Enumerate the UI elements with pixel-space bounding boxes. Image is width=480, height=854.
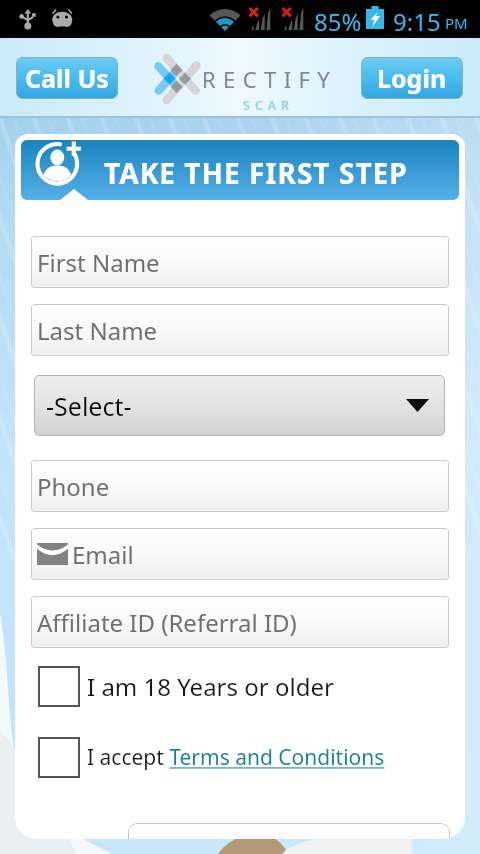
staticText: I accept Terms and Conditions: [87, 743, 385, 772]
button[interactable]: Affiliate ID (Referral ID): [31, 596, 449, 648]
button[interactable]: Login: [361, 57, 463, 99]
staticText: 85%: [314, 5, 362, 38]
staticText: Phone: [37, 470, 110, 503]
button[interactable]: Email: [31, 528, 449, 580]
staticText: 9:15: [393, 5, 441, 38]
staticText: Login: [377, 61, 447, 95]
button[interactable]: Phone: [31, 460, 449, 512]
staticText: SCAR: [243, 97, 294, 114]
button[interactable]: -Select-: [34, 375, 445, 436]
button[interactable]: First Name: [31, 236, 449, 288]
button[interactable]: Call Us: [16, 57, 118, 99]
button[interactable]: I accept Terms and Conditions: [38, 736, 385, 778]
button[interactable]: Last Name: [31, 304, 449, 356]
staticText: PM: [445, 13, 468, 33]
staticText: TAKE THE FIRST STEP: [104, 154, 408, 192]
staticText: Affiliate ID (Referral ID): [37, 606, 297, 639]
button[interactable]: Submit: [128, 823, 450, 839]
staticText: Email: [72, 538, 134, 571]
staticText: Call Us: [25, 61, 109, 95]
staticText: RECTIFY: [202, 64, 338, 94]
button[interactable]: I am 18 Years or older: [38, 665, 334, 707]
staticText: I am 18 Years or older: [87, 670, 334, 703]
staticText: Last Name: [37, 314, 158, 347]
staticText: First Name: [37, 246, 160, 279]
staticText: -Select-: [46, 389, 132, 423]
